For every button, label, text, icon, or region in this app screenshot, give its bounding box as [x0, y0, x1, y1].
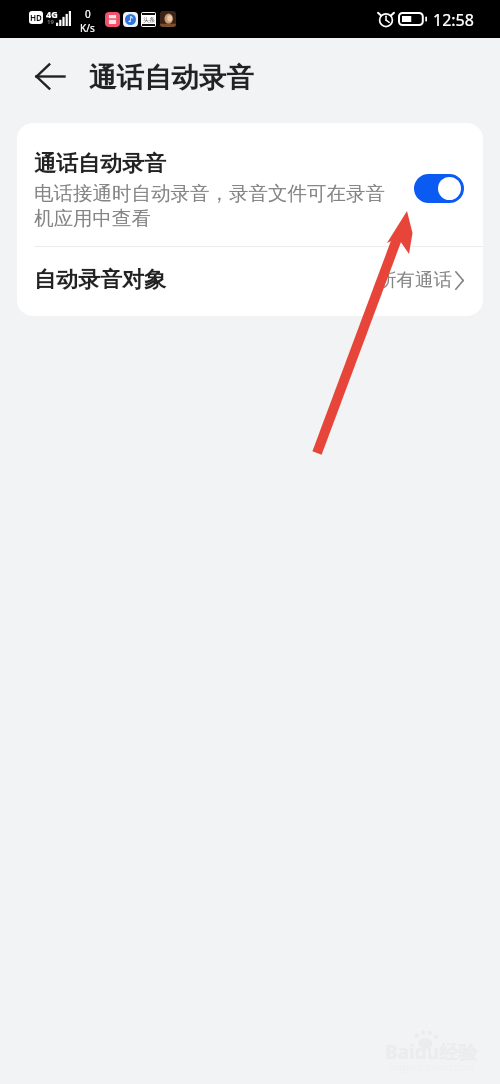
staticText: Baidu经验: [385, 1039, 478, 1065]
staticText: 头条: [143, 16, 155, 24]
staticText: 通话自动录音: [89, 61, 254, 96]
staticText: ♪: [128, 15, 134, 24]
staticText: 电话接通时自动录音，录音文件可在录音机应用中查看: [34, 181, 397, 230]
staticText: 0: [85, 7, 91, 21]
staticText: 通话自动录音: [34, 150, 166, 178]
button[interactable]: Toggle call auto recording: [414, 174, 464, 203]
staticText: HD: [30, 12, 42, 23]
button[interactable]: Back: [30, 56, 70, 96]
staticText: 19: [47, 18, 54, 26]
button[interactable]: 自动录音对象: [17, 247, 483, 316]
staticText: 自动录音对象: [34, 266, 166, 294]
staticText: 12:58: [433, 9, 474, 31]
staticText: K/s: [80, 21, 95, 35]
button[interactable]: 通话自动录音: [17, 123, 483, 246]
staticText: 4G: [46, 8, 58, 20]
staticText: 所有通话: [378, 268, 452, 291]
